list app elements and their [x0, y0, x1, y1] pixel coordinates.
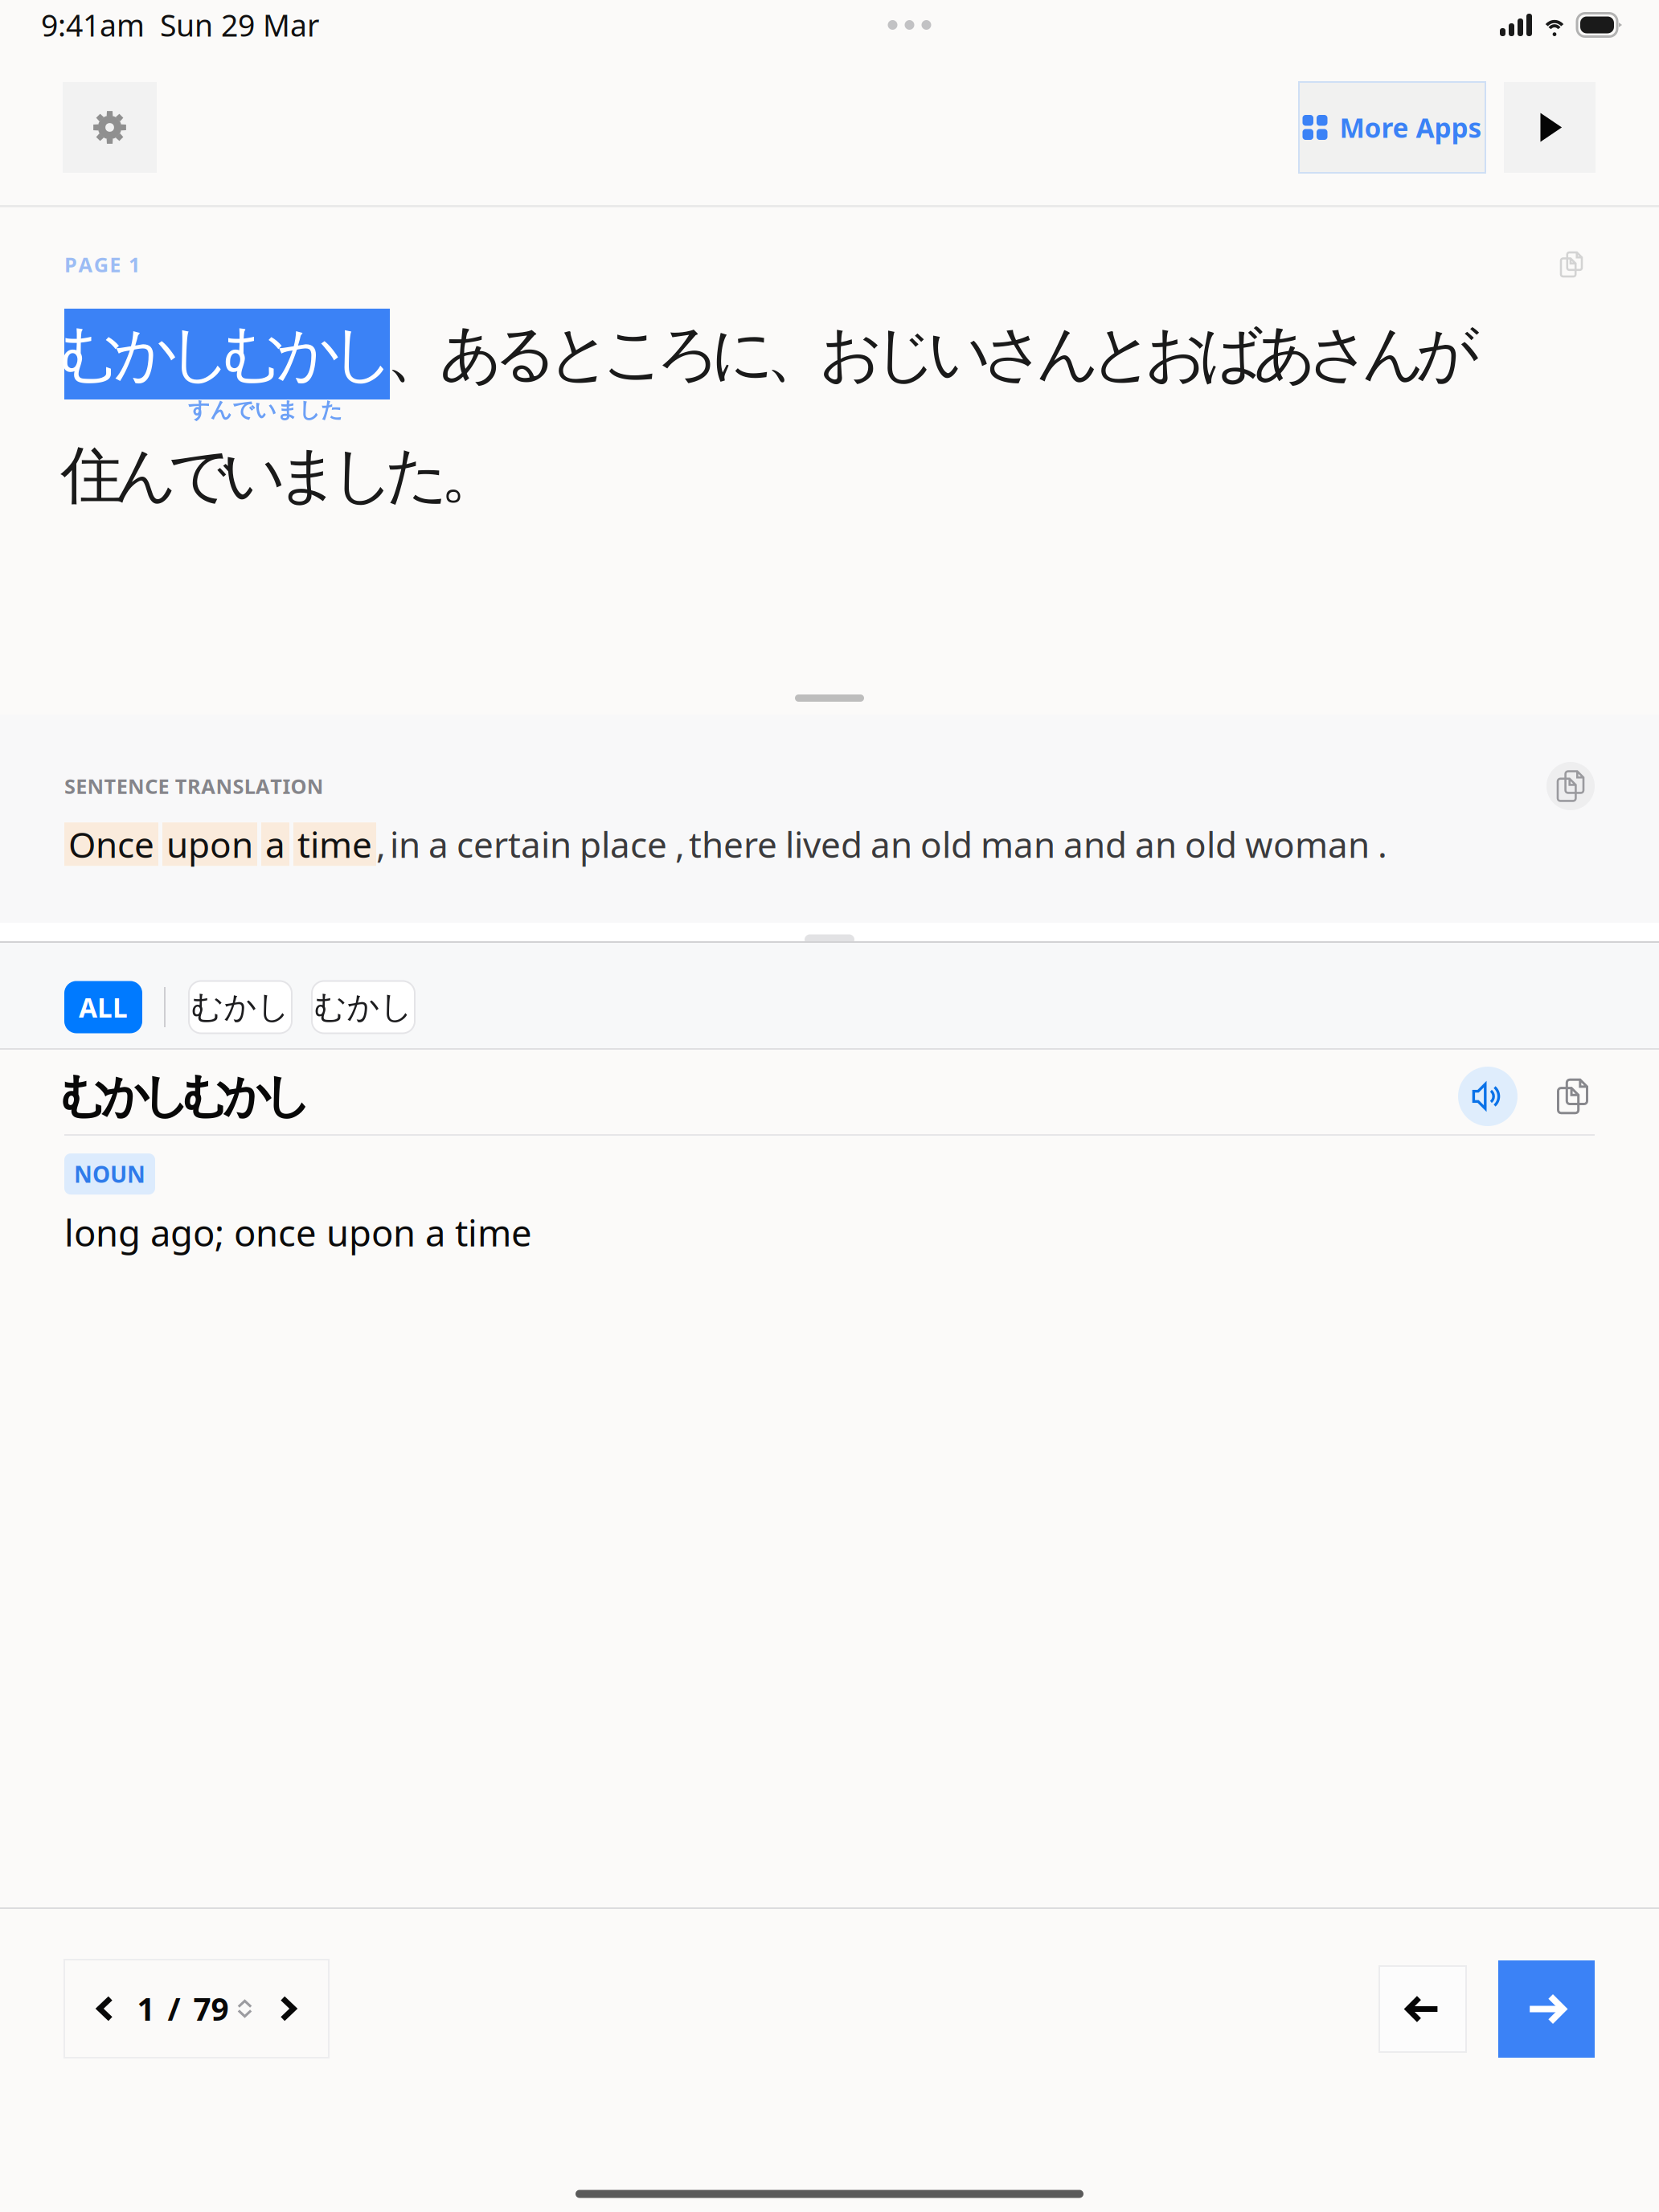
staticText: T: [270, 773, 282, 800]
staticText: R: [187, 773, 201, 800]
staticText: で: [168, 437, 232, 514]
staticText: し: [142, 1067, 190, 1125]
staticText: .: [1378, 821, 1387, 868]
staticText: ま: [277, 437, 340, 514]
staticText: 1: [129, 251, 140, 278]
staticText: 、: [766, 316, 828, 392]
staticText: E: [158, 773, 169, 800]
staticText: /: [168, 1988, 180, 2029]
staticText: More Apps: [1339, 110, 1482, 145]
button[interactable]: Copy translation: [1546, 762, 1595, 810]
staticText: ,: [675, 821, 685, 868]
staticText: む: [60, 1067, 109, 1125]
button[interactable]: Play: [1504, 82, 1596, 173]
staticText: ま: [276, 397, 298, 423]
staticText: む: [222, 316, 286, 392]
staticText: お: [1145, 316, 1208, 392]
button[interactable]: ALL: [64, 981, 142, 1033]
staticText: お: [819, 316, 883, 392]
staticText: が: [1416, 316, 1480, 392]
staticText: し: [299, 397, 320, 423]
staticText: むかし: [314, 987, 413, 1027]
staticText: か: [114, 316, 177, 392]
staticText: ば: [1199, 316, 1263, 392]
staticText: and: [1063, 821, 1127, 868]
staticText: N: [87, 773, 104, 800]
button[interactable]: Settings: [63, 82, 157, 173]
staticText: た: [385, 437, 449, 514]
staticText: ALL: [79, 989, 128, 1025]
staticText: ん: [114, 437, 177, 514]
staticText: Once: [68, 821, 154, 868]
staticText: る: [494, 316, 557, 392]
button[interactable]: Copy word: [1550, 1071, 1595, 1121]
staticText: い: [928, 316, 991, 392]
button[interactable]: むかし: [312, 981, 415, 1033]
staticText: E: [116, 773, 128, 800]
staticText: むかし: [191, 987, 290, 1027]
staticText: し: [331, 316, 394, 392]
staticText: a: [428, 821, 449, 868]
staticText: N: [216, 773, 233, 800]
staticText: 9:41am: [41, 5, 145, 45]
staticText: か: [101, 1067, 149, 1125]
staticText: old: [920, 821, 973, 868]
staticText: 。: [440, 437, 502, 514]
staticText: ,: [376, 821, 386, 868]
staticText: N: [307, 773, 324, 800]
staticText: an: [1135, 821, 1177, 868]
staticText: ろ: [657, 316, 720, 392]
button[interactable]: More Apps: [1299, 82, 1485, 173]
staticText: 79: [193, 1988, 229, 2029]
staticText: で: [232, 397, 254, 423]
staticText: む: [182, 1067, 231, 1125]
staticText: す: [188, 397, 210, 423]
button[interactable]: Play pronunciation: [1458, 1067, 1518, 1126]
staticText: あ: [1253, 316, 1317, 392]
staticText: と: [548, 316, 612, 392]
staticText: long ago; once upon a time: [64, 1208, 532, 1257]
staticText: ん: [210, 397, 232, 423]
staticText: time: [297, 821, 372, 868]
staticText: an: [870, 821, 912, 868]
staticText: か: [277, 316, 340, 392]
button[interactable]: Back: [1379, 1966, 1466, 2052]
staticText: NOUN: [74, 1159, 145, 1189]
staticText: Sun 29 Mar: [160, 5, 319, 45]
button[interactable]: Copy sentence: [1548, 241, 1595, 288]
button[interactable]: Next page: [263, 1985, 311, 2033]
staticText: woman: [1245, 821, 1370, 868]
staticText: ん: [1362, 316, 1425, 392]
staticText: い: [254, 397, 276, 423]
button[interactable]: Forward: [1498, 1960, 1595, 2058]
staticText: I: [282, 773, 290, 800]
staticText: man: [981, 821, 1055, 868]
staticText: 、: [386, 316, 448, 392]
staticText: E: [76, 773, 87, 800]
staticText: P: [64, 251, 77, 278]
staticText: there: [689, 821, 777, 868]
staticText: T: [175, 773, 187, 800]
staticText: か: [223, 1067, 271, 1125]
staticText: じ: [874, 316, 937, 392]
staticText: し: [331, 437, 394, 514]
button[interactable]: むかし: [189, 981, 292, 1033]
staticText: certain: [457, 821, 571, 868]
staticText: ん: [1036, 316, 1100, 392]
staticText: S: [64, 773, 76, 800]
staticText: こ: [602, 316, 666, 392]
staticText: む: [60, 316, 123, 392]
staticText: C: [145, 773, 158, 800]
staticText: た: [321, 397, 342, 423]
staticText: A: [256, 773, 270, 800]
staticText: さ: [982, 316, 1046, 392]
staticText: L: [244, 773, 255, 800]
staticText: N: [128, 773, 145, 800]
staticText: upon: [166, 821, 253, 868]
staticText: A: [201, 773, 216, 800]
button[interactable]: Previous page: [82, 1985, 130, 2033]
staticText: place: [580, 821, 667, 868]
staticText: A: [78, 251, 93, 278]
